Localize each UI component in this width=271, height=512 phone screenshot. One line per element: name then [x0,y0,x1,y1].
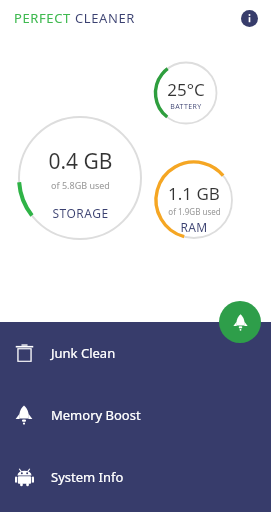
staticText: Junk Clean [51,344,116,362]
staticText: of 1.9GB used [168,206,221,217]
staticText: 0.4 GB [48,147,113,176]
button[interactable]: Info [234,3,264,33]
button[interactable]: System Info [0,446,271,508]
staticText: 25°C [167,78,205,101]
staticText: RAM [180,219,208,235]
staticText: of 5.8GB used [51,179,110,191]
button[interactable]: 25°C [151,78,221,112]
button[interactable]: Memory Boost [0,384,271,446]
staticText: 1.1 GB [168,182,220,205]
button[interactable]: Boost [219,301,261,343]
staticText: STORAGE [52,205,109,221]
staticText: Memory Boost [51,406,141,424]
button[interactable]: 1.1 GB [154,182,234,235]
button[interactable]: Junk Clean [0,322,271,384]
button[interactable]: 0.4 GB [30,147,130,221]
staticText: CLEANER [75,9,135,27]
staticText: BATTERY [170,102,202,112]
staticText: System Info [51,468,124,486]
staticText: PERFECT [14,9,71,27]
